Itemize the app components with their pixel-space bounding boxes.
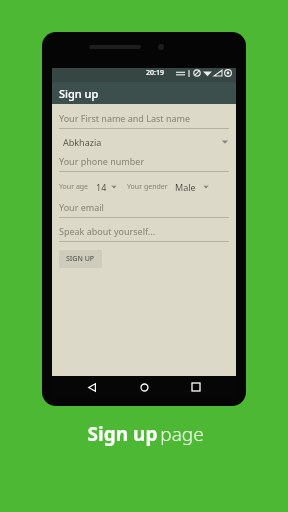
- staticText: 20:19: [146, 68, 164, 78]
- staticText: page: [160, 421, 204, 447]
- button[interactable]: Abkhazia: [59, 136, 229, 148]
- staticText: Your email: [59, 201, 104, 213]
- button[interactable]: Speak about yourself...: [59, 225, 229, 242]
- button[interactable]: 14: [96, 181, 118, 193]
- staticText: Speak about yourself...: [59, 225, 156, 237]
- button[interactable]: Your email: [59, 201, 229, 218]
- staticText: Abkhazia: [63, 136, 102, 148]
- staticText: 14: [96, 181, 107, 193]
- staticText: Sign up: [59, 86, 99, 101]
- staticText: SIGN UP: [66, 254, 95, 264]
- button[interactable]: Your First name and Last name: [59, 112, 229, 129]
- button[interactable]: Recent apps: [184, 376, 208, 398]
- staticText: Sign up: [85, 421, 160, 447]
- staticText: Male: [175, 181, 196, 193]
- staticText: Your age: [59, 182, 89, 192]
- button[interactable]: Male: [175, 181, 210, 193]
- staticText: Your gender: [127, 182, 168, 192]
- button[interactable]: Home: [132, 376, 156, 398]
- staticText: Your First name and Last name: [59, 112, 191, 124]
- button[interactable]: SIGN UP: [59, 250, 102, 268]
- button[interactable]: Your phone number: [59, 155, 229, 172]
- staticText: Your phone number: [59, 155, 145, 167]
- button[interactable]: Back: [80, 376, 104, 398]
